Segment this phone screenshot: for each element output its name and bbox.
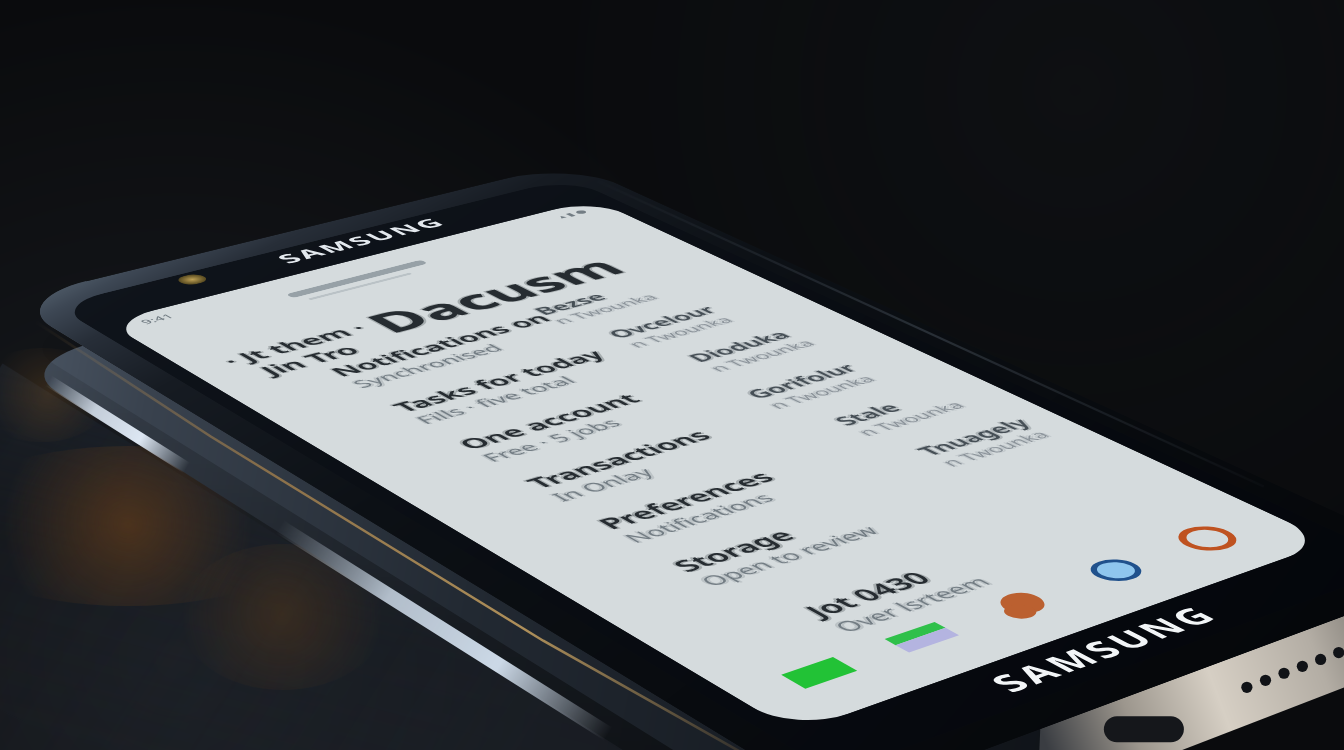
staticText: n Twounka	[703, 337, 820, 374]
button[interactable]: Notifications on	[315, 277, 704, 396]
staticText: Preferences	[592, 467, 785, 534]
staticText: Ovcelour	[601, 303, 723, 341]
staticText: Tasks for today	[388, 346, 615, 416]
button[interactable]: Tasks for today	[377, 308, 771, 432]
button[interactable]: Assistant	[1163, 520, 1251, 557]
staticText: Ovcelour	[603, 303, 726, 341]
staticText: Tnuagely	[906, 414, 1035, 459]
staticText: Synchronised	[349, 341, 511, 391]
button[interactable]: Photos	[975, 584, 1066, 623]
staticText: 9:41	[137, 312, 178, 326]
staticText: One account	[450, 390, 648, 453]
staticText: Gorifolur	[739, 360, 865, 402]
staticText: n Twounka	[545, 291, 661, 326]
button[interactable]: Messages	[773, 652, 866, 694]
staticText: Notifications on	[323, 310, 557, 380]
staticText: n Twounka	[625, 314, 741, 350]
staticText: n Twounka	[550, 291, 666, 327]
staticText: One account	[447, 389, 645, 453]
button[interactable]: Transactions	[509, 375, 915, 511]
staticText: n Twounka	[937, 427, 1059, 470]
staticText: Storage	[667, 525, 806, 577]
staticText: · Jt them ·	[214, 320, 375, 370]
staticText: Open to review	[695, 522, 889, 590]
button[interactable]: Jot 0430	[786, 495, 1185, 643]
staticText: Fills · five total	[406, 373, 579, 427]
staticText: n Twounka	[847, 398, 968, 439]
staticText: Dacusm	[346, 250, 638, 340]
button[interactable]: Preferences	[580, 411, 992, 552]
staticText: Jin Tro	[255, 341, 370, 379]
staticText: Notifications	[620, 489, 784, 546]
button[interactable]: Gorifolur	[730, 346, 935, 417]
staticText: · Jt them ·	[212, 320, 372, 369]
staticText: n Twounka	[706, 337, 823, 374]
staticText: Stale	[824, 399, 906, 429]
staticText: Tasks for today	[385, 346, 612, 416]
button[interactable]: Dioduka	[673, 312, 874, 380]
staticText: Jin Tro	[252, 341, 367, 379]
staticText: Preferences	[589, 467, 782, 533]
staticText: Over lsrteem	[829, 572, 1001, 636]
staticText: Stale	[829, 399, 911, 429]
staticText: Dacusm	[349, 250, 640, 341]
staticText: One account	[453, 390, 651, 453]
staticText: n Twounka	[761, 372, 881, 411]
staticText: Transactions	[518, 426, 719, 492]
staticText: Free · 5 jobs	[478, 415, 630, 465]
staticText: Jot 0430	[798, 567, 943, 622]
button[interactable]: Ovcelour	[593, 289, 792, 356]
staticText: Fills · five total	[412, 373, 584, 427]
staticText: n Twounka	[931, 427, 1053, 469]
staticText: In Onlay	[544, 464, 660, 505]
staticText: Notifications	[614, 489, 778, 546]
staticText: n Twounka	[850, 398, 971, 439]
staticText: n Twounka	[759, 372, 878, 411]
staticText: · Jt them ·	[217, 320, 377, 370]
staticText: Transactions	[521, 426, 722, 493]
staticText: n Twounka	[700, 336, 818, 374]
staticText: n Twounka	[547, 291, 663, 327]
staticText: Stale	[826, 399, 908, 429]
staticText: Gorifolur	[741, 360, 868, 402]
staticText: Free · 5 jobs	[475, 415, 627, 465]
button[interactable]: Tnuagely	[901, 404, 1096, 476]
staticText: n Twounka	[853, 398, 973, 439]
staticText: Open to review	[692, 522, 886, 590]
staticText: Fills · five total	[409, 373, 581, 427]
staticText: Jin Tro	[250, 341, 365, 379]
staticText: Storage	[661, 524, 800, 576]
staticText: Tasks for today	[382, 346, 609, 416]
staticText: Over lsrteem	[826, 572, 998, 636]
staticText: n Twounka	[764, 372, 884, 412]
staticText: Jot 0430	[795, 567, 940, 622]
staticText: Ovcelour	[598, 302, 720, 341]
button[interactable]: One account	[442, 341, 842, 471]
staticText: Over lsrteem	[823, 572, 995, 636]
button[interactable]: Bezse	[519, 267, 716, 332]
staticText: SAMSUNG	[976, 599, 1231, 699]
staticText: Dioduka	[681, 327, 798, 365]
staticText: Notifications	[617, 489, 781, 546]
staticText: Storage	[664, 525, 804, 576]
staticText: n Twounka	[934, 427, 1056, 469]
staticText: Gorifolur	[736, 360, 862, 402]
button[interactable]: Stale	[818, 372, 1024, 445]
staticText: Jot 0430	[792, 567, 936, 622]
staticText: Transactions	[515, 426, 716, 492]
button[interactable]: Storage	[655, 448, 1073, 596]
staticText: Notifications on	[320, 310, 555, 380]
staticText: Dioduka	[684, 327, 800, 365]
staticText: Bezse	[527, 290, 613, 318]
staticText: Bezse	[524, 290, 610, 318]
button[interactable]: Mail	[876, 617, 968, 658]
staticText: Synchronised	[346, 341, 509, 391]
staticText: Tnuagely	[909, 414, 1038, 459]
staticText: Notifications on	[326, 310, 560, 380]
staticText: Free · 5 jobs	[472, 415, 625, 465]
button[interactable]: Calendar	[1071, 552, 1161, 589]
staticText: n Twounka	[622, 313, 739, 350]
staticText: Synchronised	[343, 341, 506, 391]
staticText: In Onlay	[547, 464, 663, 505]
staticText: Tnuagely	[912, 415, 1041, 459]
